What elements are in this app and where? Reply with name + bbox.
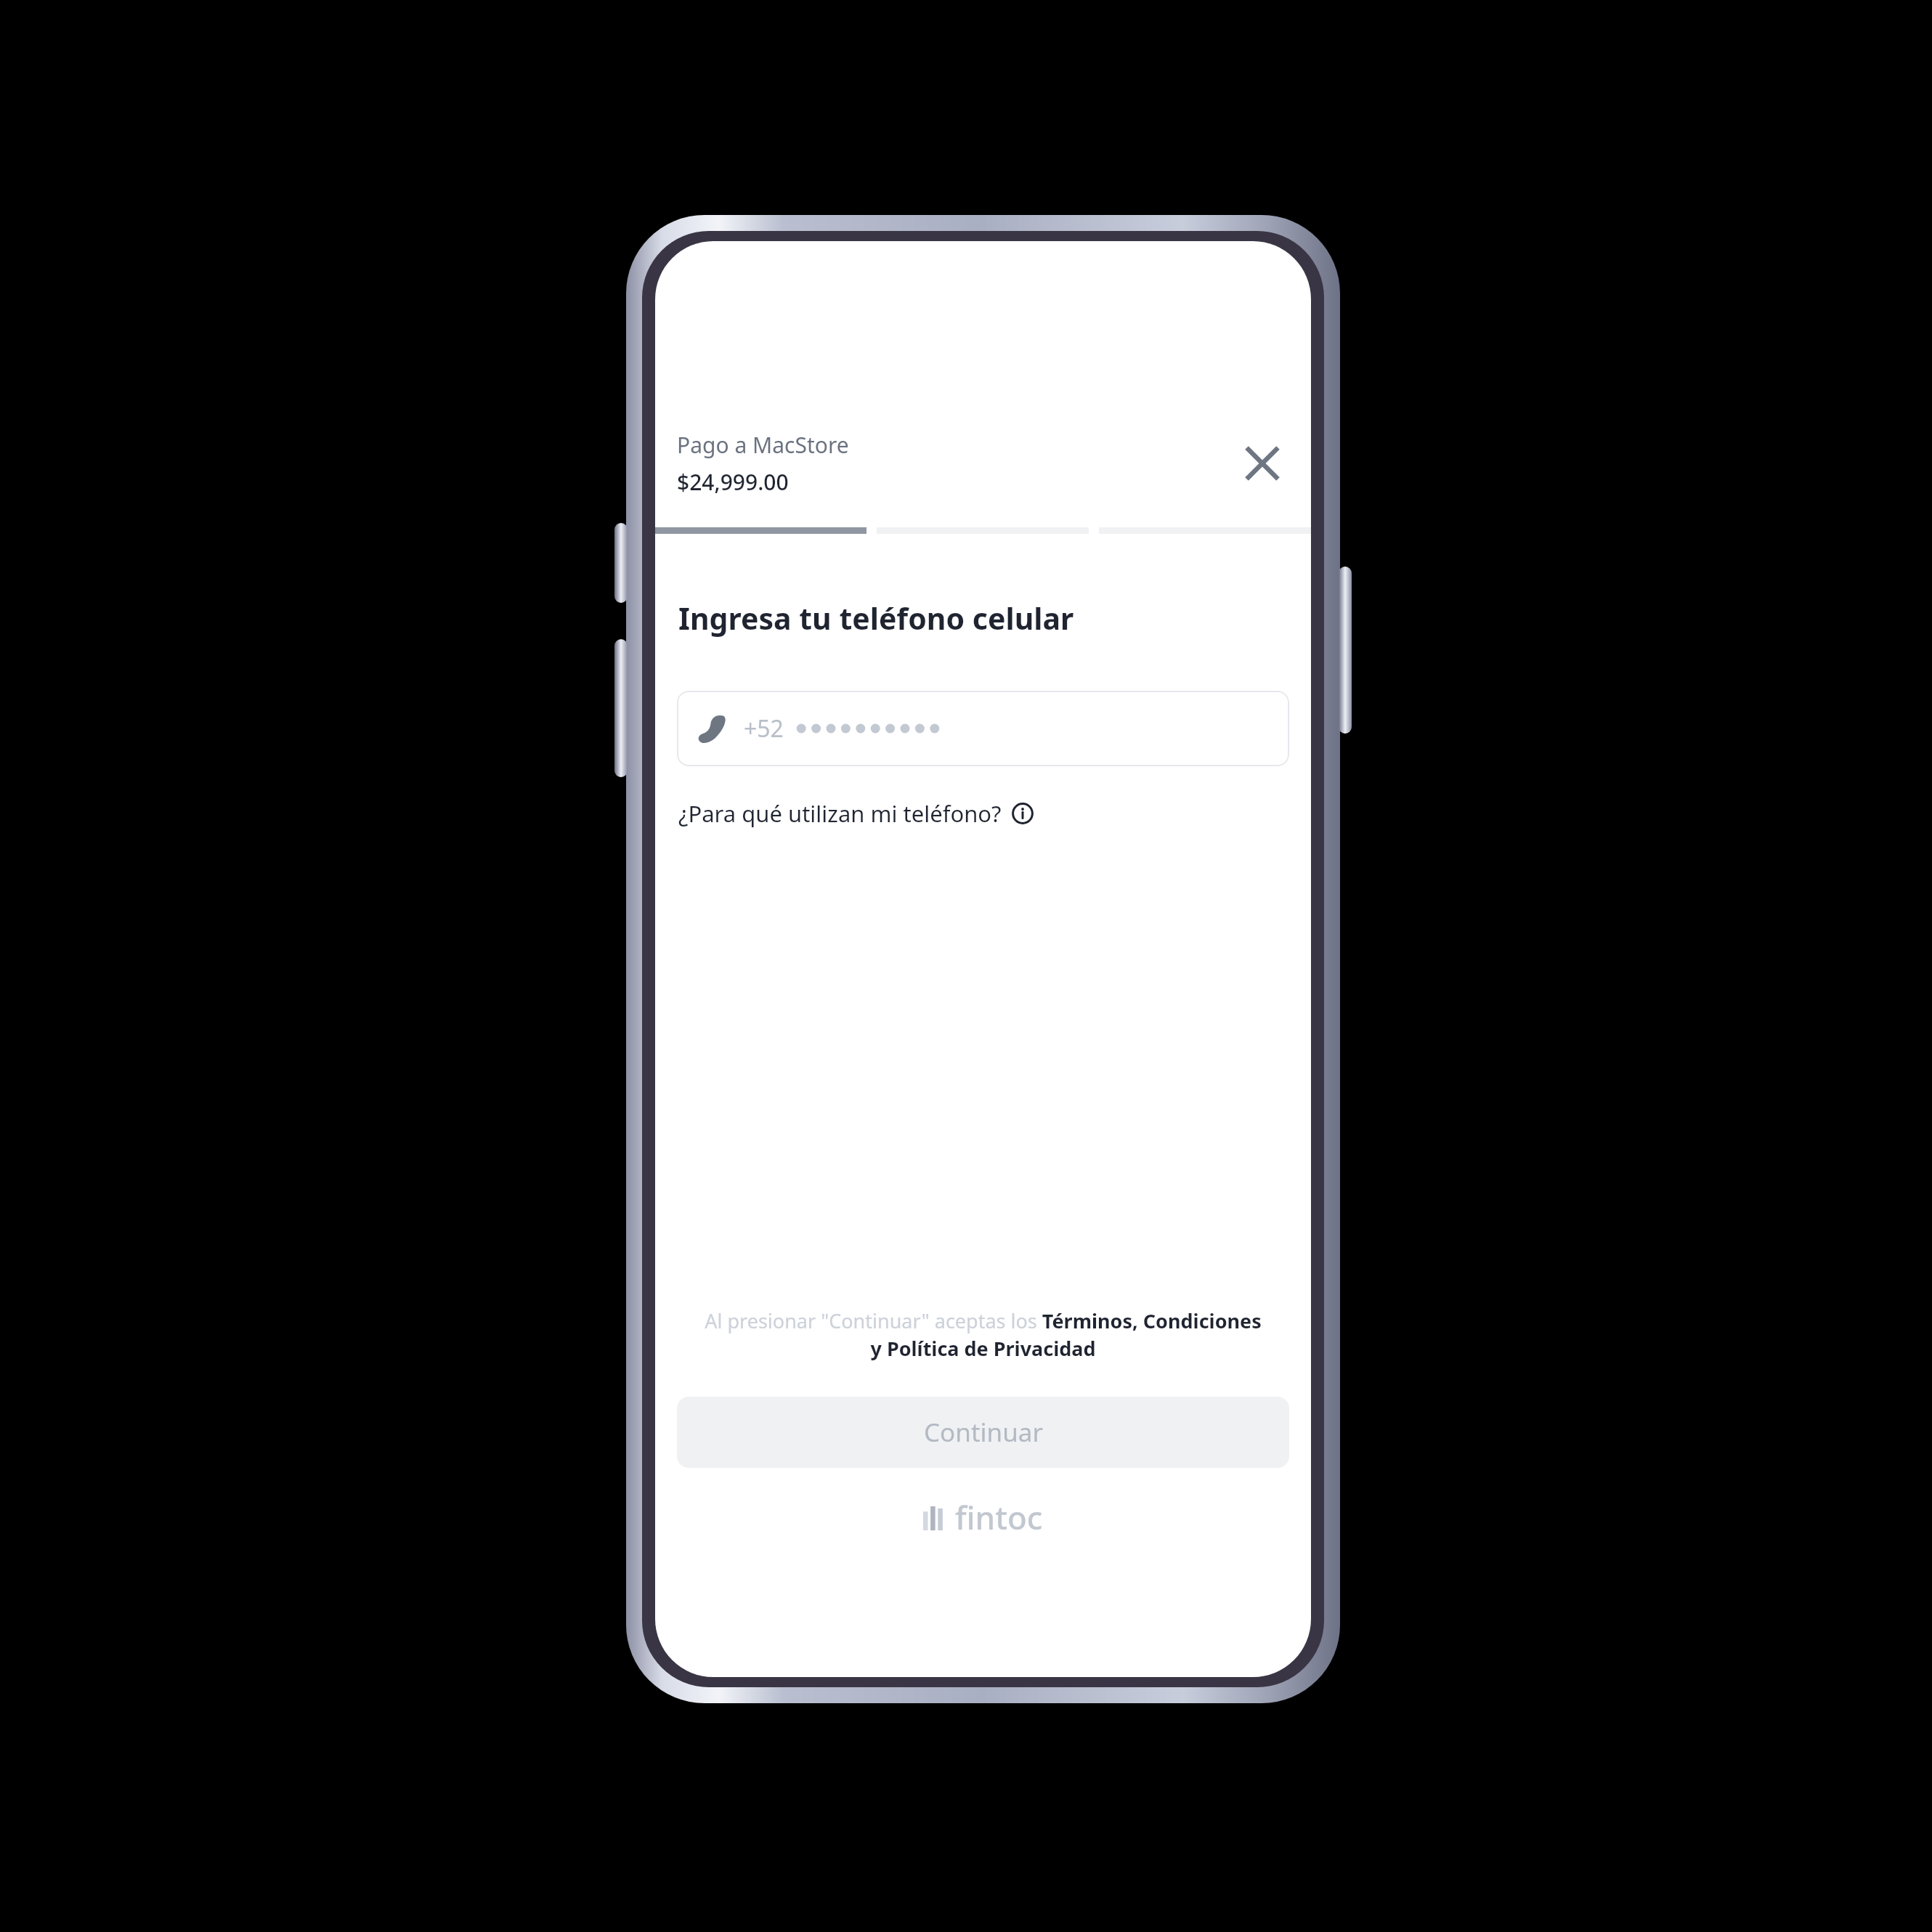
staticText: Pago a MacStore xyxy=(677,430,849,460)
button[interactable]: +52 xyxy=(677,691,1289,766)
staticText: Continuar xyxy=(924,1415,1043,1450)
button[interactable]: Continuar xyxy=(677,1397,1289,1468)
staticText: +52 xyxy=(744,713,784,744)
staticText: fintoc xyxy=(955,1495,1043,1539)
button[interactable]: Cerrar xyxy=(1230,431,1295,496)
staticText: Ingresa tu teléfono celular xyxy=(678,598,1074,638)
button[interactable]: ¿Para qué utilizan mi teléfono? xyxy=(678,798,1034,829)
staticText: ¿Para qué utilizan mi teléfono? xyxy=(678,798,1002,829)
button[interactable]: Al presionar "Continuar" aceptas los Tér… xyxy=(699,1307,1267,1362)
staticText: $24,999.00 xyxy=(677,467,789,497)
staticText: Al presionar "Continuar" aceptas los Tér… xyxy=(699,1307,1267,1362)
